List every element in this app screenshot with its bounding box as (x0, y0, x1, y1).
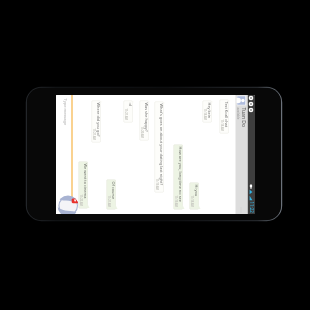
staticText: 11:20 AM (139, 126, 143, 138)
staticText: 11:19 AM (173, 195, 177, 207)
button[interactable]: Hey kein (202, 100, 213, 122)
button[interactable]: Contact avatar (236, 95, 246, 105)
staticText: :d (127, 102, 132, 106)
staticText: Tuan Do (239, 107, 246, 127)
staticText: Test Kcall chat (223, 101, 228, 127)
button[interactable]: Was she happy? (139, 100, 150, 140)
staticText: available (235, 107, 239, 119)
button[interactable]: More options (235, 205, 247, 214)
button[interactable]: Hi you (189, 182, 200, 209)
staticText: Type message (62, 98, 67, 125)
staticText: We went to cinema (82, 163, 87, 198)
staticText: 11:18 AM (219, 119, 223, 131)
staticText: 11:22 AM (78, 194, 82, 206)
button[interactable]: We went to cinema (78, 161, 89, 208)
staticText: 11:18 AM (202, 108, 206, 120)
button[interactable]: Where did you go? (91, 100, 102, 142)
staticText: 11:21 AM (123, 108, 127, 120)
staticText: 11:19 AM (154, 178, 158, 190)
staticText: 11:18 AM (189, 195, 193, 207)
staticText: 11:22 (248, 201, 254, 213)
staticText: Where did you go? (95, 102, 100, 136)
button[interactable]: Of course (106, 179, 117, 209)
button[interactable]: :d (123, 100, 134, 122)
staticText: How are you, long time no see (177, 146, 182, 202)
button[interactable]: What's goes on about your dating last ni… (154, 101, 165, 192)
staticText: 11:21 AM (91, 128, 95, 140)
staticText: Hi you (193, 184, 198, 196)
staticText: Was she happy? (143, 102, 148, 132)
staticText: Of course (110, 181, 115, 199)
button[interactable]: How are you, long time no see (173, 144, 184, 209)
staticText: Hey kein (206, 102, 211, 118)
staticText: What's goes on about your dating last ni… (158, 103, 163, 185)
staticText: 11:21 AM (106, 195, 110, 207)
button[interactable]: Test Kcall chat (219, 99, 230, 133)
